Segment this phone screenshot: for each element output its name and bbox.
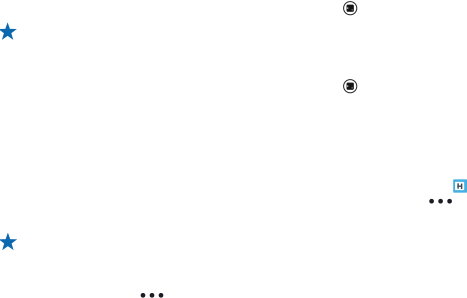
button[interactable]: Favorite xyxy=(0,233,18,252)
button[interactable]: Profile xyxy=(343,1,358,16)
button[interactable]: More xyxy=(429,196,453,206)
button[interactable]: More xyxy=(140,290,164,298)
button[interactable]: Profile xyxy=(343,79,358,94)
button[interactable]: Favorite xyxy=(0,22,18,42)
button[interactable]: Open app xyxy=(453,179,467,193)
